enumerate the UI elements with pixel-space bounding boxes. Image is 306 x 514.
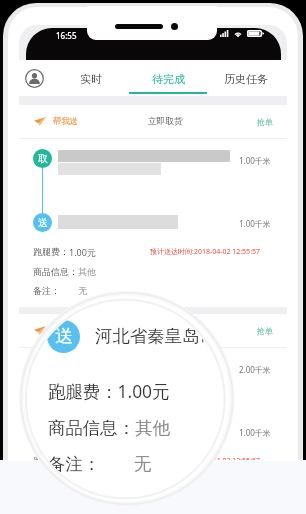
staticText: 待完成 — [152, 72, 185, 86]
staticText: 预计送达时间:2018-04-02 12:55:57 — [150, 247, 261, 257]
staticText: 跑腿费： — [33, 246, 69, 257]
staticText: 立即取货 — [148, 116, 183, 127]
staticText: 1.00千米 — [239, 155, 271, 166]
staticText: 1.00元 — [69, 455, 96, 460]
button[interactable]: 抢单 — [257, 117, 273, 127]
staticText: 送 — [55, 325, 73, 348]
staticText: 立即取货 — [148, 325, 183, 336]
staticText: 抢单 — [257, 117, 273, 127]
staticText: 无 — [134, 453, 152, 475]
button[interactable]: 帮我送 — [19, 105, 287, 307]
staticText: 备注： — [48, 453, 101, 475]
staticText: 其他 — [135, 417, 170, 439]
staticText: 16:55 — [56, 30, 77, 41]
button[interactable]: 抢单 — [257, 326, 273, 336]
staticText: 跑腿费： — [33, 455, 69, 460]
staticText: 帮我送 — [53, 116, 79, 127]
staticText: 1.00元 — [69, 246, 96, 258]
staticText: 1.00千米 — [239, 427, 271, 438]
staticText: 抢单 — [257, 326, 273, 336]
staticText: 备注： — [33, 285, 60, 296]
button[interactable]: 历史任务 — [207, 60, 285, 96]
staticText: 2.00千米 — [239, 364, 271, 375]
button[interactable]: 实时 — [52, 60, 130, 96]
staticText: 河北省秦皇岛市 — [95, 325, 217, 347]
staticText: 实时 — [80, 72, 102, 86]
staticText: 送 — [38, 216, 48, 229]
staticText: 无 — [78, 285, 87, 296]
button[interactable]: 待完成 — [129, 60, 207, 96]
staticText: 取 — [38, 152, 48, 165]
staticText: 帮我送 — [53, 325, 79, 336]
staticText: 预计送达时间:2018-04-02 12:55:57 — [150, 456, 261, 460]
button[interactable]: 帮我送 — [19, 314, 287, 460]
staticText: 其他 — [78, 266, 96, 277]
staticText: 历史任务 — [224, 72, 268, 86]
staticText: 1.00千米 — [239, 218, 271, 229]
staticText: 跑腿费：1.00元 — [48, 379, 170, 403]
staticText: 商品信息： — [33, 266, 78, 277]
button[interactable]: Profile — [25, 69, 44, 88]
staticText: 商品信息： — [48, 417, 135, 439]
